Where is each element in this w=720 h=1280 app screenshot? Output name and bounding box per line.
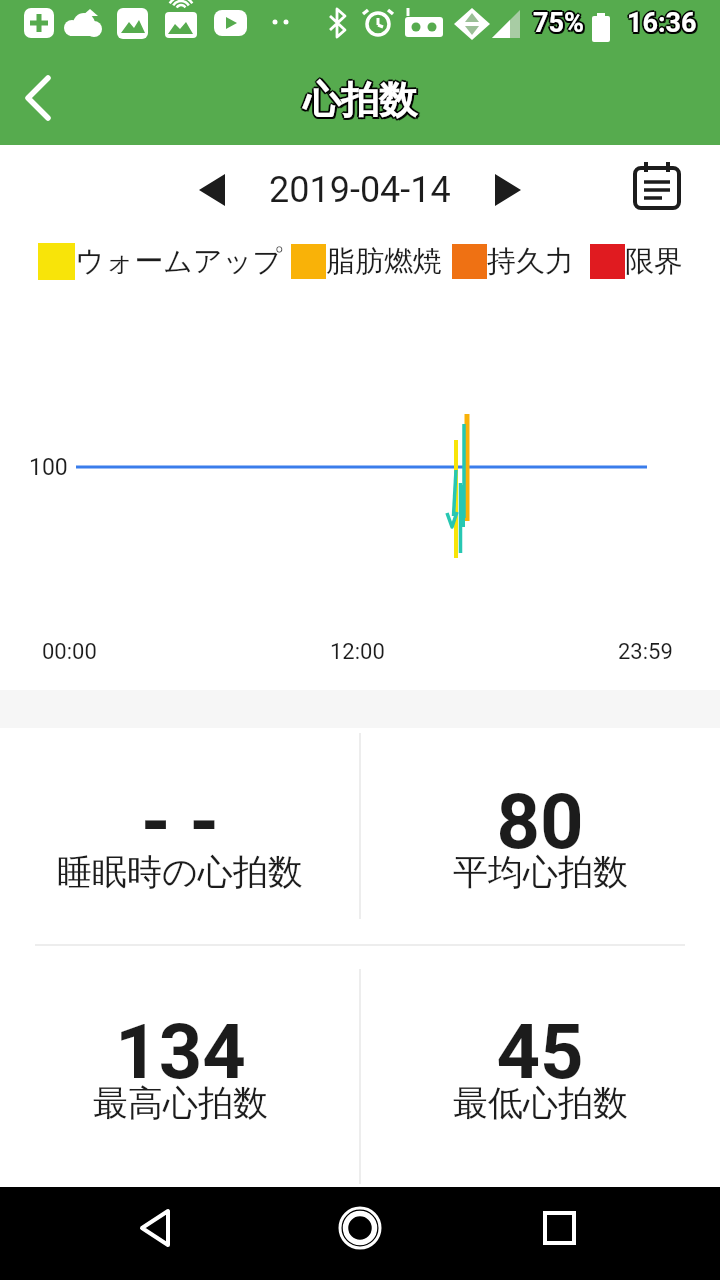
staticText: 心拍数	[305, 75, 419, 123]
staticText: 16:36	[626, 9, 696, 41]
staticText: 最低心拍数	[453, 1081, 628, 1125]
staticText: 12:00	[330, 639, 385, 665]
button[interactable]	[185, 160, 245, 220]
staticText: 75%	[535, 6, 586, 38]
button[interactable]	[325, 1193, 395, 1263]
staticText: 心拍数	[302, 75, 416, 123]
staticText: 心拍数	[301, 76, 415, 124]
staticText: 75%	[533, 7, 584, 39]
staticText: 心拍数	[302, 78, 416, 126]
button[interactable]	[10, 68, 70, 128]
button[interactable]	[524, 1193, 594, 1263]
staticText: 16:36	[629, 9, 699, 41]
staticText: 心拍数	[305, 78, 419, 126]
button[interactable]: - -	[0, 777, 360, 866]
staticText: 持久力	[487, 243, 574, 280]
staticText: 心拍数	[303, 78, 417, 126]
staticText: 80	[496, 777, 584, 866]
staticText: 16:36	[629, 7, 699, 39]
staticText: 睡眠時の心拍数	[57, 850, 303, 894]
staticText: 75%	[532, 6, 583, 38]
staticText: 心拍数	[303, 74, 417, 122]
staticText: 75%	[533, 5, 584, 37]
staticText: 16:36	[629, 6, 699, 38]
staticText: 心拍数	[305, 76, 419, 124]
button[interactable]: 134	[0, 1007, 360, 1096]
staticText: 75%	[531, 7, 582, 39]
staticText: 最高心拍数	[93, 1081, 268, 1125]
button[interactable]	[628, 158, 686, 216]
button[interactable]: 80	[360, 777, 720, 866]
staticText: 23:59	[618, 639, 673, 665]
staticText: ウォームアップ	[75, 243, 283, 280]
staticText: 16:36	[626, 6, 696, 38]
staticText: 75%	[533, 9, 584, 41]
staticText: 16:36	[627, 9, 697, 41]
staticText: 75%	[535, 7, 586, 39]
staticText: 00:00	[42, 639, 97, 665]
staticText: 75%	[535, 9, 586, 41]
staticText: 限界	[625, 243, 683, 280]
button[interactable]	[475, 160, 535, 220]
staticText: 心拍数	[303, 76, 417, 124]
staticText: 134	[115, 1007, 246, 1096]
staticText: 100	[29, 454, 68, 481]
button[interactable]: 45	[360, 1007, 720, 1096]
staticText: 16:36	[627, 5, 697, 37]
staticText: 平均心拍数	[453, 850, 628, 894]
staticText: 75%	[532, 9, 583, 41]
staticText: 脂肪燃焼	[326, 243, 442, 280]
staticText: - -	[141, 777, 219, 866]
staticText: 45	[496, 1007, 584, 1096]
button[interactable]	[125, 1193, 195, 1263]
staticText: 16:36	[625, 7, 695, 39]
staticText: 2019-04-14	[269, 169, 451, 211]
staticText: 16:36	[627, 7, 697, 39]
